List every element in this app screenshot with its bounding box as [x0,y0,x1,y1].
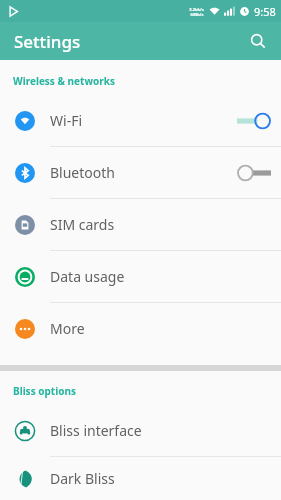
staticText: Wi-Fi [50,111,237,130]
button[interactable]: Wi-Fi toggle, on [237,111,271,131]
staticText: More [50,319,281,338]
staticText: SIM cards [50,215,281,234]
staticText: Data usage [50,267,281,286]
staticText: Bluetooth [50,163,237,182]
button[interactable]: Data usage [0,251,281,303]
staticText: Dark Bliss [50,469,281,488]
button[interactable]: Dark Bliss [0,457,281,500]
staticText: 608b/s [190,12,204,17]
button[interactable]: Search [243,26,273,56]
staticText: Bliss options [13,384,76,398]
button[interactable]: Bluetooth [0,147,281,199]
staticText: 9:58 [254,4,276,19]
button[interactable]: More [0,303,281,354]
button[interactable]: Bliss interface [0,405,281,457]
staticText: 3.2kb/s [189,7,204,12]
staticText: Wireless & networks [13,74,115,88]
button[interactable]: Bluetooth toggle, off [237,163,271,183]
staticText: Bliss interface [50,421,281,440]
staticText: Settings [14,30,81,53]
button[interactable]: Wi-Fi [0,95,281,147]
button[interactable]: SIM cards [0,199,281,251]
